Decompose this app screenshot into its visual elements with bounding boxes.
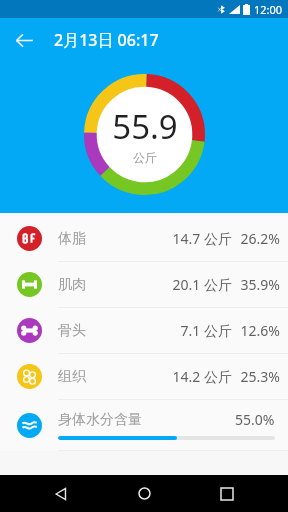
staticText: 2月13日 06:17 (54, 29, 159, 51)
staticText: 肌肉 (58, 276, 144, 294)
button[interactable]: 肌肉 (0, 262, 288, 307)
staticText: 14.2 公斤 (144, 367, 232, 386)
staticText: 骨头 (58, 322, 144, 340)
staticText: 35.9% (232, 275, 280, 294)
staticText: 20.1 公斤 (144, 275, 232, 294)
staticText: 身体水分含量 (58, 411, 235, 429)
staticText: 26.2% (232, 229, 280, 248)
staticText: 12.6% (232, 321, 280, 340)
staticText: 14.7 公斤 (144, 229, 232, 248)
button[interactable]: 骨头 (0, 308, 288, 353)
button[interactable]: 身体水分含量 (0, 400, 288, 450)
staticText: 公斤 (133, 150, 157, 165)
staticText: 7.1 公斤 (144, 321, 232, 340)
button[interactable]: Home (122, 475, 166, 512)
button[interactable]: Back (6, 22, 42, 58)
button[interactable]: Back (39, 475, 83, 512)
staticText: 55.0% (235, 410, 275, 429)
button[interactable]: Recent apps (205, 475, 249, 512)
staticText: 体脂 (58, 230, 144, 248)
staticText: 55.9 (112, 104, 178, 149)
staticText: 组织 (58, 368, 144, 386)
button[interactable]: 体脂 (0, 216, 288, 261)
staticText: 12:00 (254, 2, 283, 17)
button[interactable]: 组织 (0, 354, 288, 399)
staticText: 25.3% (232, 367, 280, 386)
